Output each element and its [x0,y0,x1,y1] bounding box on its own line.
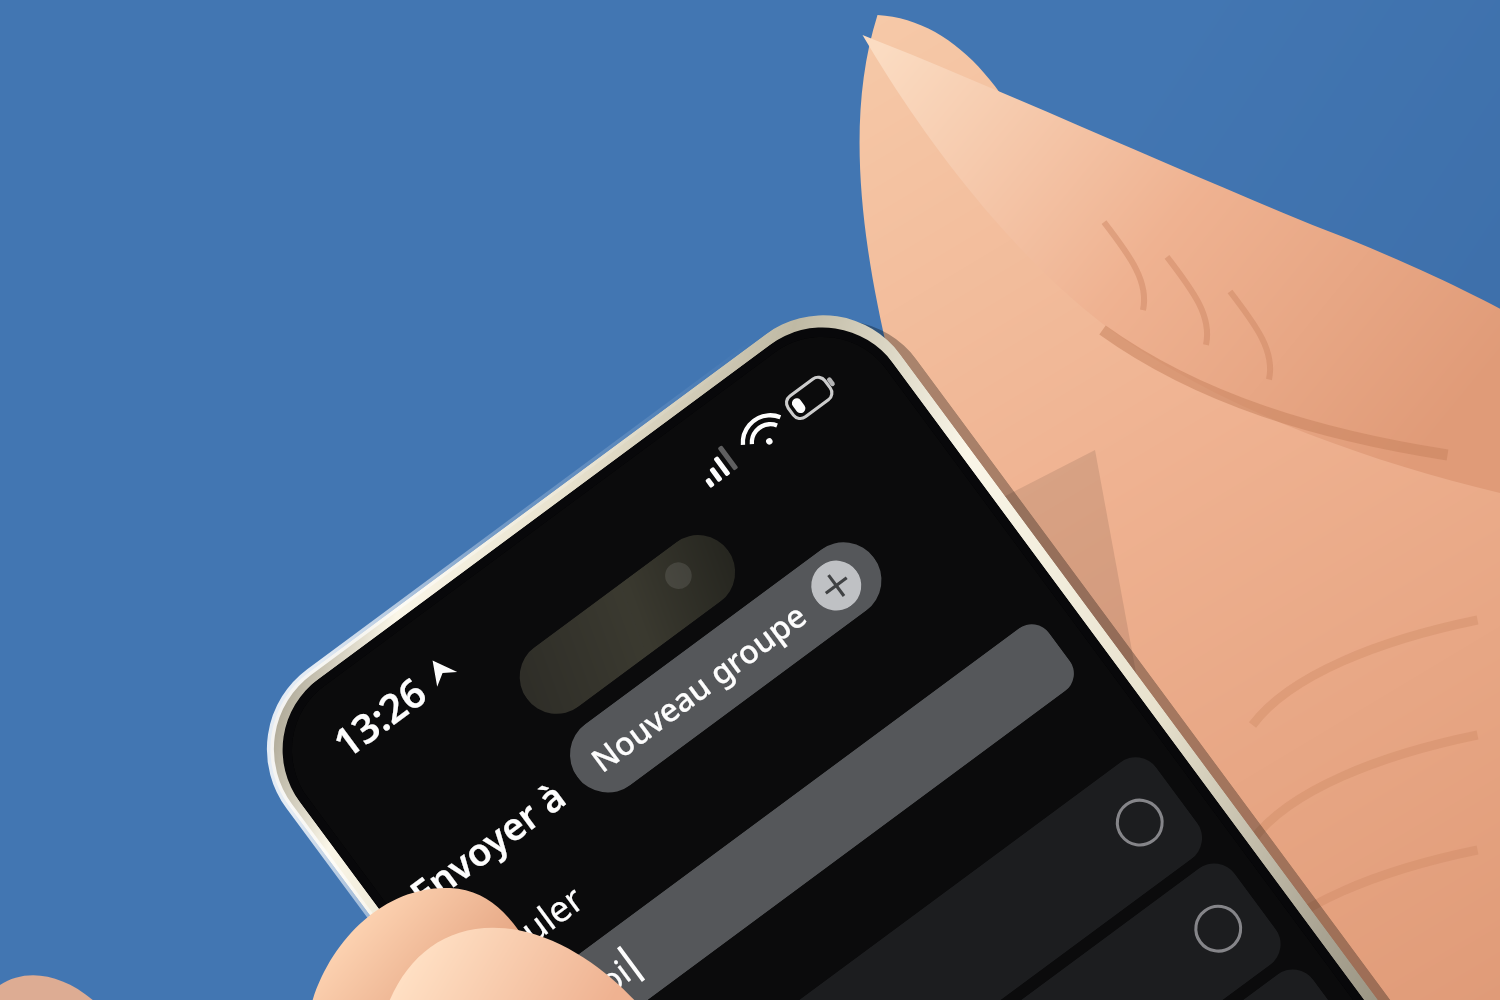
button[interactable]: Contact [751,959,1369,1000]
staticText: Discussions [563,991,729,1000]
staticText: Moi [563,949,640,1000]
button[interactable]: Contact [673,853,1291,1000]
button[interactable]: Moi (Vous) [594,747,1212,1000]
staticText: Nouveau groupe [582,593,815,782]
other: Sélectionner [1258,996,1336,1000]
other: Sélectionner [1179,889,1257,968]
other: Ajouter un groupe [801,551,871,620]
staticText: 13:26 [321,664,436,769]
staticText: Envoyer à [399,769,575,919]
staticText: Annuler [456,874,594,994]
button[interactable]: Annuler [428,532,1050,1000]
button[interactable]: Nouveau groupe [555,527,897,808]
other: Sélectionner [1101,783,1179,862]
button[interactable]: Moi [499,615,1083,1000]
